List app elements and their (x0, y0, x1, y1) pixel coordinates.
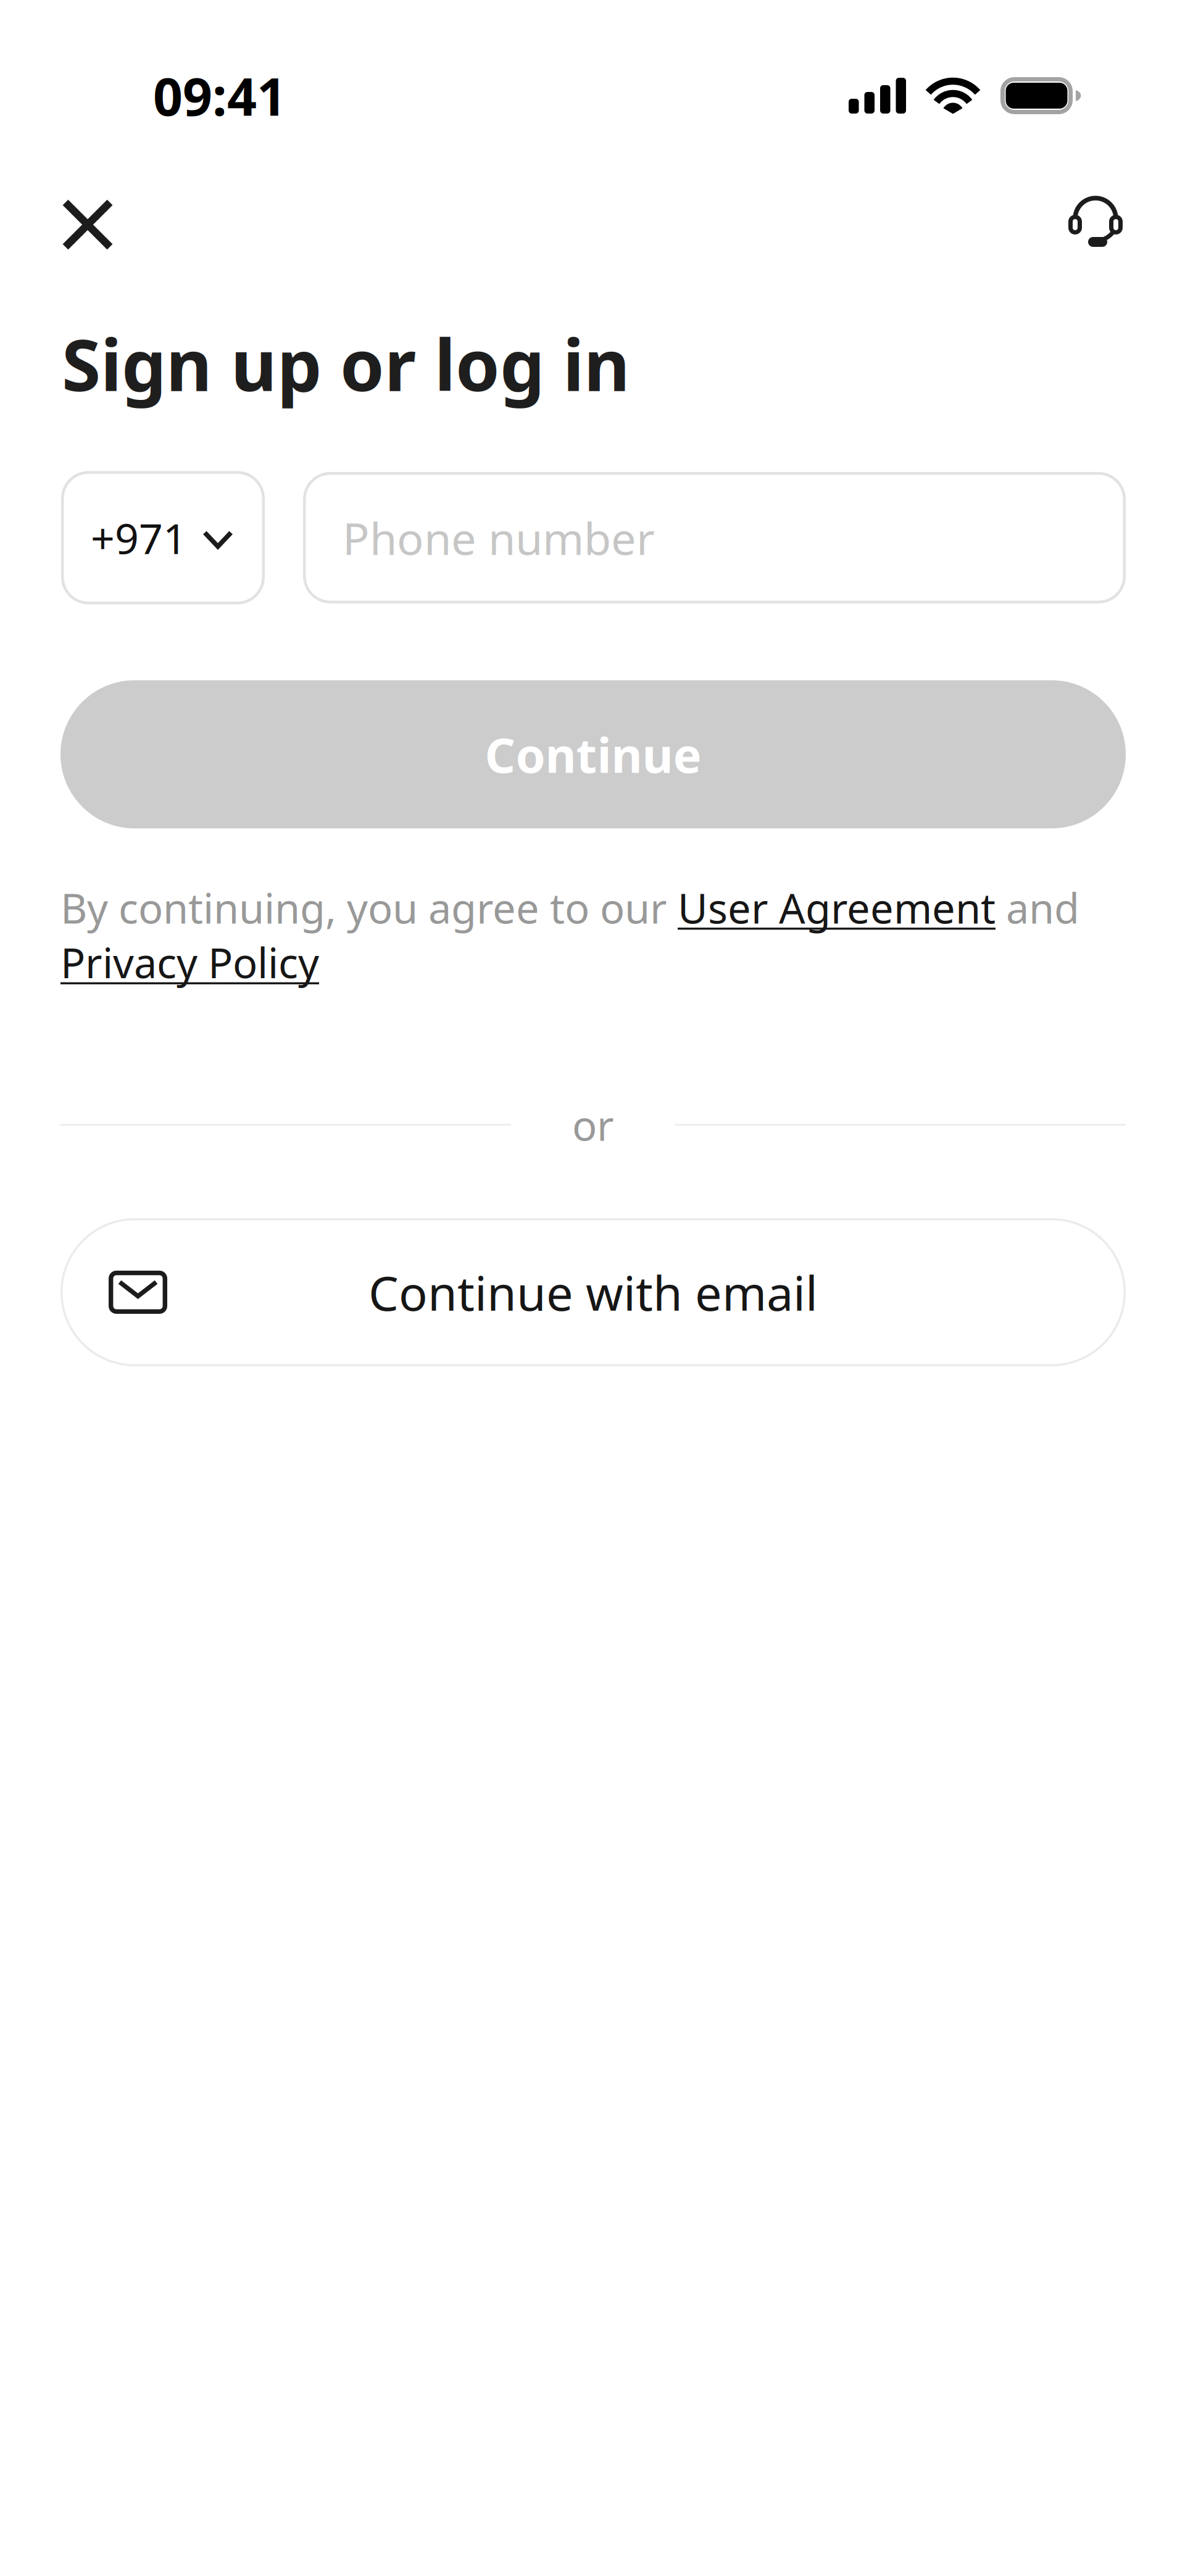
button[interactable]: User Agreement (678, 885, 995, 933)
staticText: Phone number (343, 508, 655, 567)
staticText: Sign up or log in (62, 317, 630, 411)
staticText: By continuing, you agree to our User Agr… (60, 880, 1079, 990)
staticText: +971 (91, 510, 187, 566)
button[interactable]: Continue (60, 680, 1126, 828)
button[interactable]: Phone number (303, 472, 1126, 603)
button[interactable]: Contact support (1054, 180, 1142, 269)
staticText: Continue (485, 723, 701, 786)
button[interactable]: +971 (61, 471, 265, 604)
button[interactable]: Close (43, 180, 132, 269)
button[interactable]: Privacy Policy (60, 939, 318, 988)
staticText: or (572, 1097, 614, 1152)
staticText: 09:41 (153, 61, 286, 130)
button[interactable]: Continue with email (60, 1218, 1126, 1366)
staticText: Continue with email (368, 1261, 818, 1324)
